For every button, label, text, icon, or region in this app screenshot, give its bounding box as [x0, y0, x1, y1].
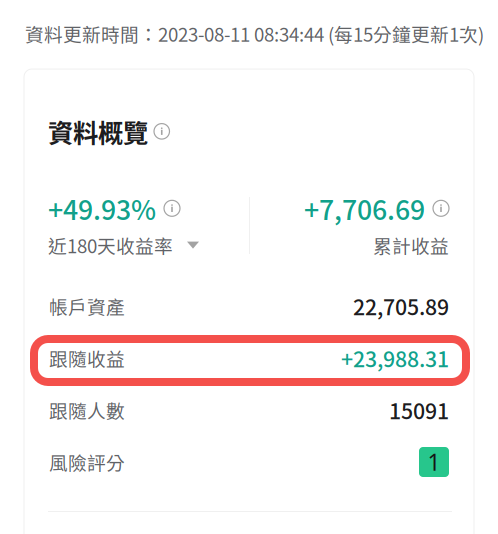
staticText: 15091	[389, 395, 449, 425]
button[interactable]: 跟隨人數	[49, 384, 449, 436]
staticText: 22,705.89	[353, 291, 449, 321]
button[interactable]: 近180天收益率	[48, 232, 199, 259]
staticText: 近180天收益率	[48, 232, 173, 259]
button[interactable]: 帳戶資產	[49, 280, 449, 332]
staticText: +7,706.69	[304, 189, 425, 228]
staticText: 資料概覽	[48, 113, 148, 150]
staticText: 跟隨收益	[49, 344, 125, 371]
button[interactable]: 風險評分	[49, 436, 449, 488]
staticText: 1	[427, 447, 440, 477]
staticText: 帳戶資產	[49, 292, 125, 319]
staticText: +49.93%	[48, 189, 156, 228]
staticText: 資料更新時間：2023-08-11 08:34:44 (每15分鐘更新1次)	[25, 20, 484, 47]
staticText: 累計收益	[373, 232, 449, 259]
staticText: 跟隨人數	[49, 396, 125, 423]
staticText: 風險評分	[49, 448, 125, 475]
button[interactable]: 跟隨收益	[49, 332, 449, 384]
staticText: +23,988.31	[341, 343, 449, 373]
